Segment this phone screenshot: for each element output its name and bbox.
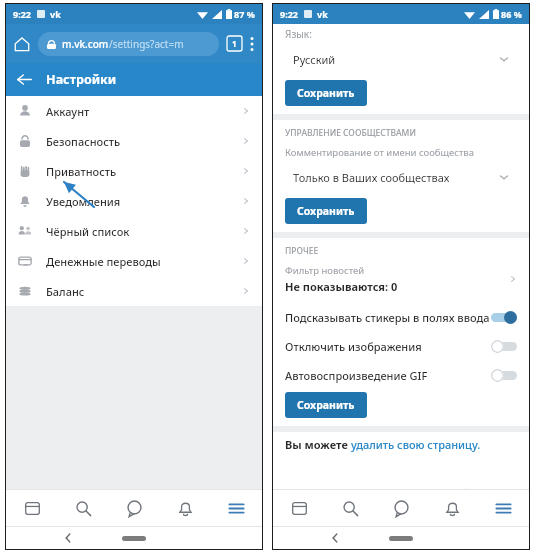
staticText: Сохранить [297,204,355,218]
staticText: Комментирование от имени сообщества [285,146,474,159]
staticText: /settings?act=m [109,37,184,51]
button[interactable]: Уведомления [6,186,262,216]
button[interactable]: Search [325,490,376,526]
button[interactable]: Notifications [427,490,478,526]
staticText: Уведомления [46,194,242,209]
button[interactable]: Сохранить [285,198,367,224]
staticText: ПРОЧЕЕ [285,245,319,257]
staticText: Чёрный список [46,224,242,239]
staticText: 86 % [501,8,522,20]
button[interactable]: Подсказывать стикеры в полях ввода [273,310,529,325]
staticText: Сохранить [297,398,355,412]
button[interactable]: Messages [109,490,160,526]
other: Home [122,536,146,541]
staticText: Подсказывать стикеры в полях ввода [285,310,491,325]
staticText: Отключить изображения [285,339,491,354]
button[interactable]: Отключить изображения [273,339,529,354]
button[interactable]: Home [14,36,30,52]
button[interactable]: удалить свою страницу. [351,437,481,452]
button[interactable]: Только в Ваших сообществах [284,164,518,190]
button[interactable]: Back [17,72,32,87]
button[interactable]: Tabs [227,36,242,51]
button[interactable]: m.vk.com [38,32,219,56]
other: Back [64,534,72,542]
button[interactable]: Баланс [6,276,262,306]
button[interactable]: More options [250,36,254,52]
staticText: 9:22 [280,8,298,20]
button[interactable]: Notifications [160,490,211,526]
button[interactable]: Фильтр новостей [273,264,529,294]
staticText: УПРАВЛЕНИЕ СООБЩЕСТВАМИ [285,127,416,139]
staticText: Настройки [46,71,117,88]
staticText: Фильтр новостей [285,264,365,277]
staticText: удалить свою страницу. [351,437,481,452]
button[interactable]: Feed [6,490,58,526]
button[interactable]: Приватность [6,156,262,186]
staticText: Язык: [285,27,312,41]
button[interactable]: Search [58,490,109,526]
staticText: Автовоспроизведение GIF [285,368,491,383]
staticText: Аккаунт [46,104,242,119]
button[interactable]: Безопасность [6,126,262,156]
staticText: m.vk.com [62,37,109,51]
other: Home [389,536,413,541]
staticText: 1 [232,38,237,49]
button[interactable]: Menu [211,490,262,526]
button[interactable]: Сохранить [285,392,367,418]
staticText: Только в Ваших сообществах [293,170,499,185]
staticText: Баланс [46,284,242,299]
staticText: Вы можете [285,437,351,452]
button[interactable]: Menu [478,490,529,526]
staticText: 87 % [234,8,255,20]
button[interactable]: Аккаунт [6,96,262,126]
staticText: Денежные переводы [46,254,242,269]
staticText: Безопасность [46,134,242,149]
button[interactable]: Автовоспроизведение GIF [273,368,529,383]
staticText: vk [317,8,328,20]
staticText: 9:22 [13,8,31,20]
button[interactable]: Денежные переводы [6,246,262,276]
staticText: vk [50,8,61,20]
button[interactable]: Feed [273,490,325,526]
staticText: Сохранить [297,86,355,100]
button[interactable]: Сохранить [285,80,367,106]
staticText: Приватность [46,164,242,179]
other: Back [331,534,339,542]
staticText: Не показываются: 0 [285,279,398,294]
staticText: Русский [293,52,499,67]
button[interactable]: Русский [284,46,518,72]
button[interactable]: Messages [376,490,427,526]
button[interactable]: Чёрный список [6,216,262,246]
